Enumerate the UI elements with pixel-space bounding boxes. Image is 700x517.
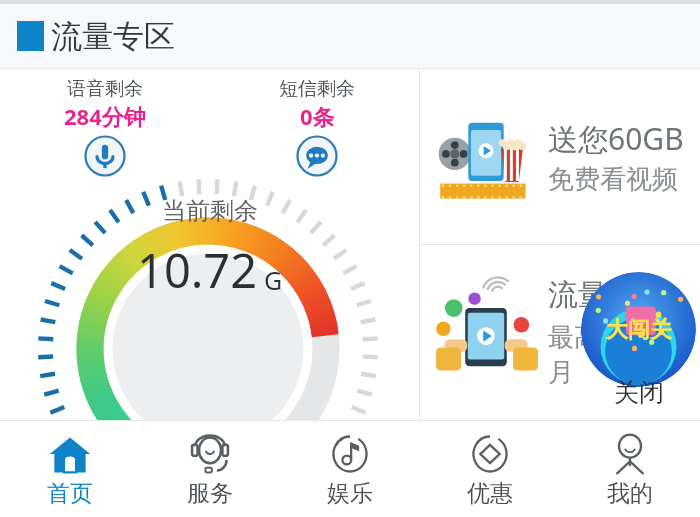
staticText: 当前剩余 (162, 196, 258, 226)
button[interactable]: 首页 (0, 421, 140, 517)
staticText: 免费看视频 (548, 163, 678, 196)
button[interactable]: 我的流量 (124, 427, 294, 473)
staticText: 流量专区 (51, 17, 175, 56)
staticText: 最高送20G/月 (548, 318, 686, 389)
staticText: 10.72 (137, 238, 258, 302)
button[interactable]: 关闭 (614, 377, 664, 408)
staticText: 短信剩余 (279, 77, 355, 101)
button[interactable]: 优惠 (420, 421, 560, 517)
staticText: 0条 (300, 101, 335, 131)
button[interactable]: Promotion (581, 272, 696, 387)
other: SMS remaining (296, 135, 338, 177)
button[interactable]: 娱乐 (280, 421, 420, 517)
staticText: 首页 (47, 479, 93, 508)
button[interactable]: 语音剩余 (50, 77, 160, 177)
staticText: 服务 (187, 479, 233, 508)
button[interactable]: 服务 (140, 421, 280, 517)
staticText: 送您60GB (548, 118, 684, 159)
button[interactable]: 送您60GB (420, 69, 700, 244)
staticText: G (264, 263, 283, 297)
staticText: 优惠 (467, 479, 513, 508)
button[interactable]: 流量多多 (420, 245, 700, 420)
other: Voice minutes (84, 135, 126, 177)
staticText: 娱乐 (327, 479, 373, 508)
button[interactable]: 短信剩余 (262, 77, 372, 177)
staticText: 我的流量 (159, 431, 259, 462)
button[interactable]: 我的 (560, 421, 700, 517)
staticText: 流量多多 (548, 276, 668, 314)
staticText: 284分钟 (64, 101, 146, 131)
staticText: 我的 (607, 479, 653, 508)
staticText: 大闯关 (606, 316, 672, 344)
staticText: 语音剩余 (67, 77, 143, 101)
